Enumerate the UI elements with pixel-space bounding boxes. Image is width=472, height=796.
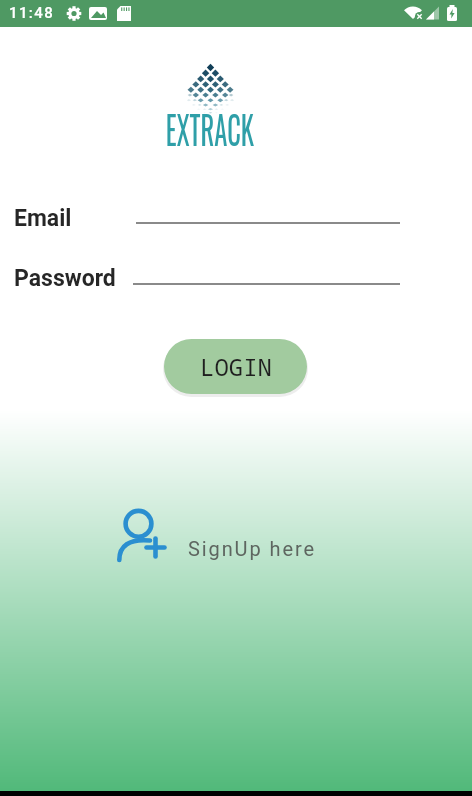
staticText: Email [14,205,72,232]
button[interactable] [133,253,400,285]
staticText: SignUp here [188,537,316,560]
button[interactable]: SignUp here [112,498,318,568]
staticText: LOGIN [200,350,272,383]
staticText: EXTRACK [166,100,254,157]
button[interactable]: LOGIN [164,339,307,394]
staticText: 11:48 [9,4,55,22]
button[interactable] [136,192,400,224]
staticText: Password [14,265,116,292]
